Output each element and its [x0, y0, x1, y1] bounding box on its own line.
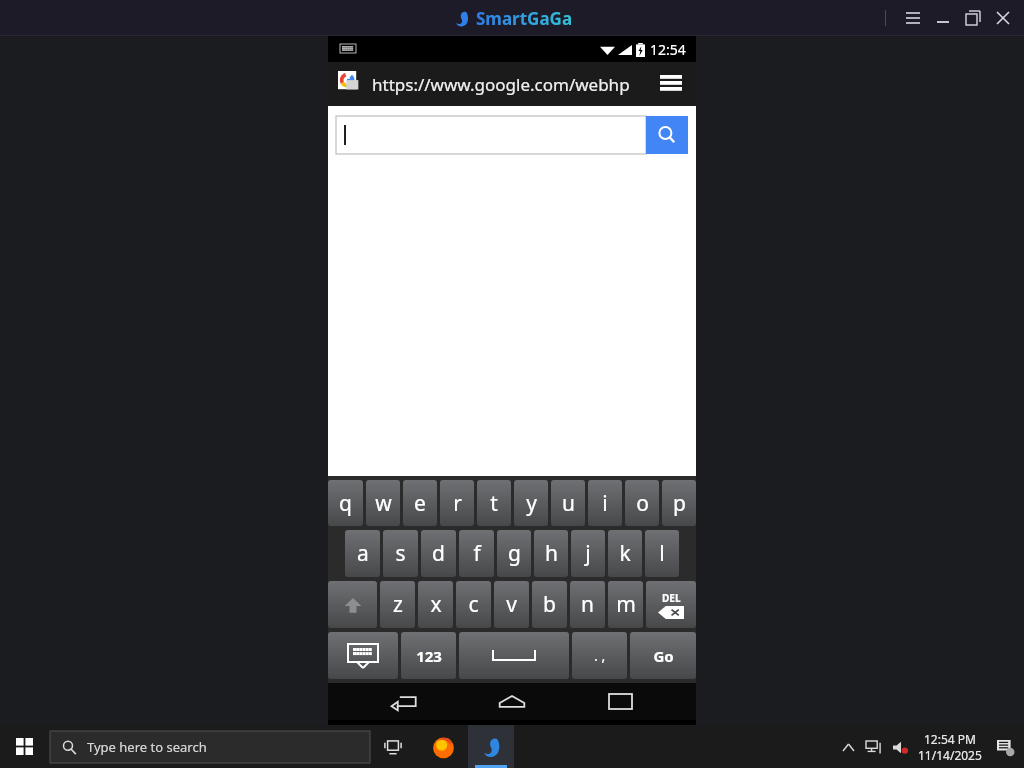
staticText: a	[357, 539, 369, 568]
staticText: f	[473, 539, 481, 568]
button[interactable]: Task view	[376, 727, 410, 767]
staticText: 12:54	[650, 40, 686, 59]
button[interactable]: d	[421, 530, 456, 577]
button[interactable]: SmartGaGa	[468, 725, 514, 768]
button[interactable]: Site information	[338, 71, 364, 97]
staticText: 11/14/2025	[918, 747, 982, 763]
button[interactable]: n	[570, 581, 605, 628]
button[interactable]: t	[477, 480, 511, 526]
staticText: n	[581, 590, 594, 619]
button[interactable]: c	[456, 581, 491, 628]
button[interactable]: o	[625, 480, 659, 526]
button[interactable]: f	[459, 530, 494, 577]
button[interactable]: Notifications	[990, 727, 1020, 767]
staticText: e	[414, 489, 426, 518]
button[interactable]: Maximize	[958, 4, 988, 32]
staticText: . ,	[594, 646, 606, 665]
staticText: z	[393, 590, 403, 619]
button[interactable]: b	[532, 581, 567, 628]
staticText: g	[508, 539, 521, 568]
button[interactable]: Search	[646, 116, 688, 154]
staticText: l	[659, 539, 665, 568]
button[interactable]: s	[383, 530, 418, 577]
staticText: w	[375, 489, 392, 518]
staticText: i	[602, 489, 608, 518]
button[interactable]: m	[608, 581, 643, 628]
button[interactable]: Recent apps	[588, 683, 652, 720]
button[interactable]: i	[588, 480, 622, 526]
staticText: r	[453, 489, 462, 518]
button[interactable]: q	[328, 480, 363, 526]
staticText: c	[468, 590, 479, 619]
button[interactable]: r	[440, 480, 474, 526]
button[interactable]: Network	[860, 727, 888, 767]
staticText: DEL	[662, 591, 681, 605]
button[interactable]: 123	[401, 632, 456, 679]
button[interactable]: Volume muted	[888, 727, 914, 767]
staticText: y	[526, 489, 537, 518]
button[interactable]: j	[571, 530, 605, 577]
staticText: t	[490, 489, 498, 518]
button[interactable]: Hide keyboard	[328, 632, 398, 679]
button[interactable]: Show hidden icons	[836, 727, 860, 767]
button[interactable]: Close	[988, 4, 1018, 32]
button[interactable]: Back	[372, 683, 436, 720]
button[interactable]: g	[497, 530, 531, 577]
staticText: h	[545, 539, 558, 568]
button[interactable]: v	[494, 581, 529, 628]
button[interactable]: u	[551, 480, 585, 526]
staticText: b	[543, 590, 556, 619]
button[interactable]: Home	[480, 683, 544, 720]
button[interactable]: Start	[0, 725, 48, 768]
button[interactable]: k	[608, 530, 642, 577]
button[interactable]: p	[662, 480, 696, 526]
staticText: q	[339, 489, 352, 518]
button[interactable]: Menu	[898, 4, 928, 32]
button[interactable]: l	[645, 530, 679, 577]
staticText: v	[506, 590, 517, 619]
staticText: k	[619, 539, 631, 568]
staticText: j	[585, 539, 591, 568]
staticText: Type here to search	[87, 738, 207, 756]
button[interactable]: Punctuation	[572, 632, 627, 679]
staticText: o	[636, 489, 649, 518]
staticText: u	[562, 489, 575, 518]
staticText: x	[430, 590, 442, 619]
button[interactable]: y	[514, 480, 548, 526]
button[interactable]: 12:54 PM	[918, 726, 982, 768]
staticText: m	[616, 590, 636, 619]
button[interactable]: x	[418, 581, 453, 628]
staticText: Go	[653, 646, 674, 666]
button[interactable]: z	[380, 581, 415, 628]
staticText: p	[673, 489, 686, 518]
button[interactable]: Shift	[328, 581, 377, 628]
button[interactable]: DEL	[646, 581, 696, 628]
staticText: 12:54 PM	[924, 731, 976, 747]
staticText: 123	[416, 646, 442, 666]
staticText: d	[432, 539, 445, 568]
button[interactable]: a	[345, 530, 380, 577]
staticText: s	[395, 539, 406, 568]
staticText: https://www.google.com/webhp	[372, 73, 652, 96]
staticText: SmartGaGa	[476, 7, 573, 30]
button[interactable]: Minimize	[928, 4, 958, 32]
button[interactable]	[336, 116, 646, 154]
button[interactable]: h	[534, 530, 568, 577]
button[interactable]: Space	[459, 632, 569, 679]
button[interactable]: Tabs	[656, 69, 686, 99]
button[interactable]: e	[403, 480, 437, 526]
button[interactable]: Type here to search	[50, 731, 370, 763]
button[interactable]: Go	[630, 632, 696, 679]
button[interactable]: Firefox	[420, 725, 466, 768]
button[interactable]: w	[366, 480, 400, 526]
